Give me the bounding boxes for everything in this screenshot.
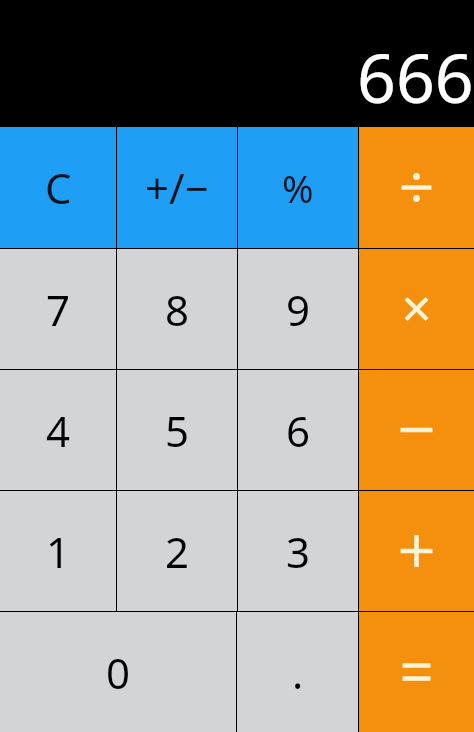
staticText: C xyxy=(45,159,72,216)
staticText: 0 xyxy=(106,644,131,701)
button[interactable]: 1 xyxy=(0,491,116,611)
staticText: 7 xyxy=(46,281,71,338)
button[interactable]: 4 xyxy=(0,370,116,490)
staticText: . xyxy=(292,644,304,701)
button[interactable]: 7 xyxy=(0,249,116,369)
button[interactable]: 2 xyxy=(117,491,237,611)
button[interactable]: 6 xyxy=(238,370,358,490)
button[interactable]: 8 xyxy=(117,249,237,369)
staticText: 3 xyxy=(286,523,311,580)
button[interactable]: +/− xyxy=(117,127,237,248)
button[interactable]: 3 xyxy=(238,491,358,611)
button[interactable]: Add xyxy=(359,491,474,611)
staticText: 5 xyxy=(165,402,190,459)
staticText: 8 xyxy=(165,281,190,338)
staticText: 2 xyxy=(165,523,190,580)
button[interactable]: 5 xyxy=(117,370,237,490)
button[interactable]: C xyxy=(0,127,116,248)
staticText: 4 xyxy=(46,402,71,459)
button[interactable]: Subtract xyxy=(359,370,474,490)
button[interactable]: Multiply xyxy=(359,249,474,369)
staticText: 1 xyxy=(46,523,71,580)
button[interactable]: % xyxy=(238,127,358,248)
button[interactable]: 9 xyxy=(238,249,358,369)
button[interactable]: 0 xyxy=(0,612,236,732)
button[interactable]: . xyxy=(237,612,358,732)
staticText: 666 xyxy=(357,30,474,123)
staticText: +/− xyxy=(145,159,209,216)
staticText: 6 xyxy=(286,402,311,459)
staticText: 9 xyxy=(286,281,311,338)
button[interactable]: Divide xyxy=(359,127,474,248)
button[interactable]: Equals xyxy=(359,612,474,732)
staticText: % xyxy=(282,162,314,214)
